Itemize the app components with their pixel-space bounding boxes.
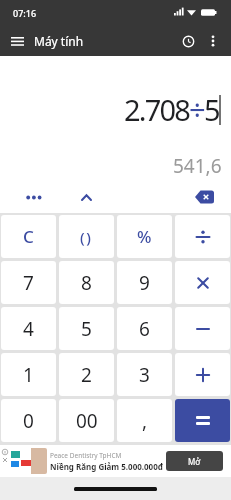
staticText: () [80, 227, 93, 247]
staticText: 6 [139, 316, 150, 342]
button[interactable]: , [117, 399, 172, 442]
button[interactable]: 5 [59, 307, 114, 350]
button[interactable]: 4 [1, 307, 56, 350]
staticText: % [137, 225, 152, 248]
button[interactable]: % [117, 215, 172, 258]
button[interactable] [175, 307, 230, 350]
button[interactable]: C [1, 215, 56, 258]
button[interactable] [173, 181, 231, 213]
button[interactable]: 0 [1, 399, 56, 442]
button[interactable] [175, 215, 230, 258]
staticText: 4 [23, 316, 34, 342]
button[interactable]: () [59, 215, 114, 258]
button[interactable] [178, 31, 198, 51]
staticText: , [142, 408, 148, 434]
staticText: Mở [188, 456, 201, 467]
staticText: 8 [81, 270, 92, 296]
button[interactable]: 7 [1, 261, 56, 304]
button[interactable]: 6 [117, 307, 172, 350]
staticText: 00 [76, 408, 98, 434]
staticText: 0 [23, 408, 34, 434]
button[interactable]: 3 [117, 353, 172, 396]
button[interactable] [9, 33, 25, 49]
staticText: 2.708÷5 [124, 90, 219, 129]
button[interactable] [0, 181, 57, 213]
button[interactable] [57, 181, 115, 213]
button[interactable] [175, 261, 230, 304]
staticText: 5 [81, 316, 92, 342]
button[interactable] [175, 399, 230, 442]
button[interactable]: 1 [1, 353, 56, 396]
staticText: 1 [23, 362, 34, 388]
staticText: C [23, 225, 34, 248]
button[interactable]: 9 [117, 261, 172, 304]
button[interactable] [205, 33, 221, 49]
staticText: 2 [81, 362, 92, 388]
staticText: 7 [23, 270, 34, 296]
staticText: 3 [139, 362, 150, 388]
staticText: Peace Dentistry TpHCM [50, 451, 122, 460]
staticText: 07:16 [13, 7, 37, 19]
button[interactable]: 8 [59, 261, 114, 304]
button[interactable]: 2 [59, 353, 114, 396]
staticText: Máy tính [34, 33, 84, 49]
staticText: 9 [139, 270, 150, 296]
button[interactable]: 00 [59, 399, 114, 442]
staticText: 541,6 [173, 153, 222, 179]
button[interactable] [175, 353, 230, 396]
button[interactable]: Mở [166, 451, 223, 471]
staticText: Niềng Răng Giảm 5.000.000đ [50, 461, 163, 472]
